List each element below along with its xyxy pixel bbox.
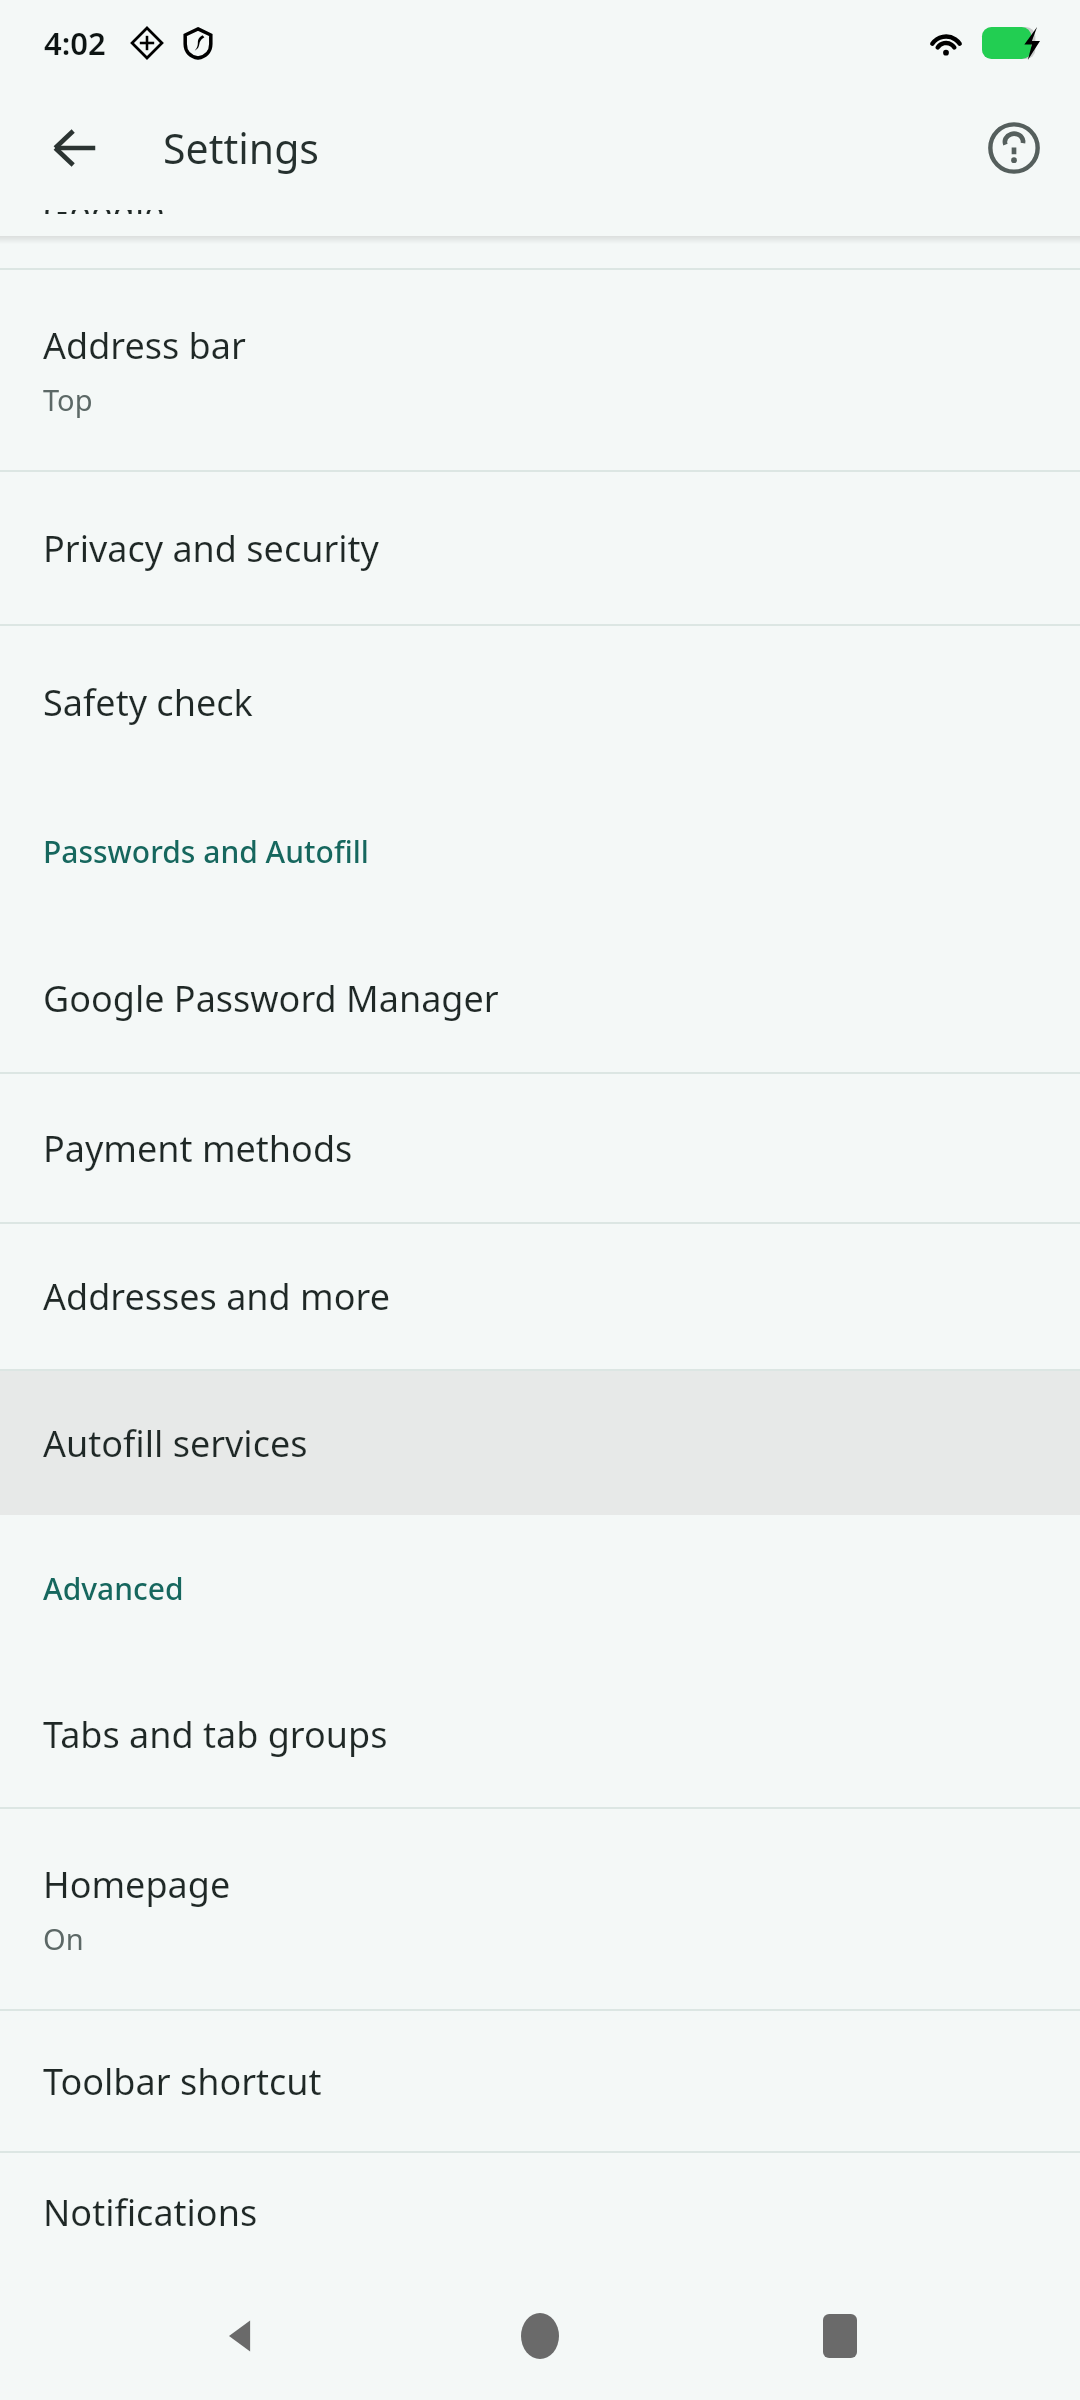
staticText: Homepage	[43, 1860, 231, 1909]
staticText: Advanced	[43, 1568, 184, 1609]
staticText: Privacy and security	[43, 524, 379, 573]
button[interactable]: Recent apps	[780, 2276, 900, 2396]
staticText: Tabs and tab groups	[43, 1710, 388, 1759]
staticText: Autofill services	[43, 1419, 308, 1468]
button[interactable]: Safety check	[0, 626, 1080, 778]
staticText: Settings	[163, 120, 320, 176]
staticText: Notifications	[43, 2188, 258, 2237]
staticText: 4:02	[44, 22, 106, 64]
staticText: Google	[43, 210, 165, 214]
button[interactable]: Back	[180, 2276, 300, 2396]
button[interactable]: Help and feedback	[966, 100, 1062, 196]
staticText: Addresses and more	[43, 1272, 390, 1321]
staticText: Safety check	[43, 678, 253, 727]
staticText: Payment methods	[43, 1124, 353, 1173]
staticText: Passwords and Autofill	[43, 831, 369, 872]
button[interactable]: Home	[480, 2276, 600, 2396]
staticText: On	[43, 1919, 84, 1958]
button[interactable]: Notifications	[0, 2153, 1080, 2272]
staticText: Google Password Manager	[43, 974, 499, 1023]
button[interactable]: Autofill services	[0, 1371, 1080, 1515]
button[interactable]: Navigate up	[26, 99, 124, 197]
button[interactable]: Addresses and more	[0, 1224, 1080, 1369]
staticText: Address bar	[43, 321, 246, 370]
staticText: Toolbar shortcut	[43, 2057, 322, 2106]
button[interactable]: Payment methods	[0, 1074, 1080, 1222]
button[interactable]: Google	[0, 210, 1080, 236]
button[interactable]: Google Password Manager	[0, 924, 1080, 1072]
button[interactable]: Homepage	[0, 1809, 1080, 2009]
button[interactable]: Privacy and security	[0, 472, 1080, 624]
button[interactable]: Address bar	[0, 270, 1080, 470]
button[interactable]: Tabs and tab groups	[0, 1661, 1080, 1807]
staticText: Top	[43, 380, 93, 419]
button[interactable]: Toolbar shortcut	[0, 2011, 1080, 2151]
